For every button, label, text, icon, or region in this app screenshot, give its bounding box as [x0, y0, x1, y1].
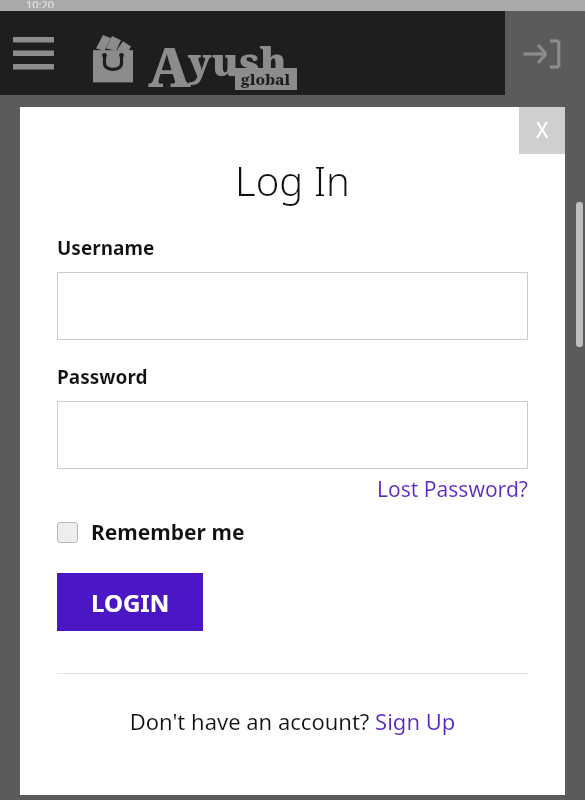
staticText: Don't have an account? Sign Up: [20, 706, 565, 736]
staticText: X: [536, 116, 549, 145]
button[interactable]: Open menu: [13, 37, 54, 70]
button[interactable]: Don't have an account? Sign Up: [20, 706, 565, 736]
staticText: Log In: [20, 153, 565, 207]
staticText: Password: [57, 364, 148, 390]
button[interactable]: Lost Password?: [377, 475, 528, 504]
button[interactable]: Password field: [57, 401, 528, 469]
button[interactable]: LOGIN: [57, 573, 203, 631]
staticText: A: [148, 29, 191, 103]
staticText: Remember me: [91, 518, 245, 547]
button[interactable]: Remember me: [57, 518, 245, 547]
button[interactable]: Username field: [57, 272, 528, 340]
staticText: Lost Password?: [377, 475, 528, 504]
button[interactable]: Log in: [522, 39, 562, 69]
staticText: global: [241, 69, 291, 89]
button[interactable]: Close: [519, 107, 565, 154]
staticText: 10:20: [26, 0, 55, 8]
staticText: LOGIN: [91, 586, 170, 619]
staticText: Username: [57, 235, 155, 261]
staticText: yush: [188, 33, 287, 87]
